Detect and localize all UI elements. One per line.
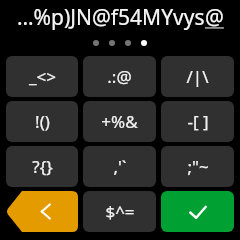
staticText: $^= (105, 200, 135, 223)
button[interactable]: …%p)JN@f54MYvys (0, 0, 240, 34)
button[interactable]: -[ ] (161, 101, 234, 142)
button[interactable]: ?{} (6, 146, 78, 187)
button[interactable]: .:@ (83, 56, 156, 97)
button[interactable]: Confirm (161, 191, 234, 232)
button[interactable]: _<> (6, 56, 78, 97)
staticText: ,'` (113, 155, 127, 178)
button[interactable]: ,'` (83, 146, 156, 187)
staticText: +%& (101, 110, 138, 133)
button[interactable]: !() (6, 101, 78, 142)
button[interactable]: ;"~ (161, 146, 234, 187)
staticText: /|\ (186, 65, 209, 88)
staticText: ;"~ (187, 155, 209, 178)
staticText: ?{} (32, 155, 53, 178)
staticText: -[ ] (187, 110, 209, 133)
button[interactable]: $^= (83, 191, 156, 232)
staticText: .:@ (107, 65, 132, 88)
button[interactable]: /|\ (161, 56, 234, 97)
button[interactable]: Backspace (6, 191, 78, 232)
staticText: …%p)JN@f54MYvys (17, 3, 205, 32)
staticText: _<> (29, 65, 56, 88)
button[interactable]: +%& (83, 101, 156, 142)
staticText: @ (205, 3, 224, 32)
staticText: !() (35, 110, 50, 133)
